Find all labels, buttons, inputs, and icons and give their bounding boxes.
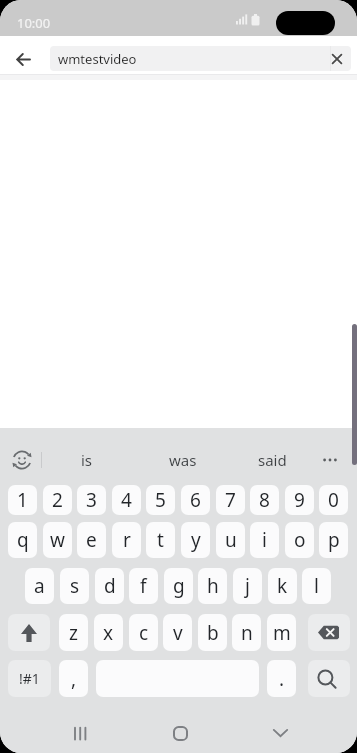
staticText: k — [277, 573, 288, 599]
staticText: 8 — [259, 487, 270, 513]
staticText: g — [173, 573, 185, 599]
button[interactable]: 3 — [77, 485, 106, 515]
staticText: p — [328, 527, 340, 553]
button[interactable] — [5, 443, 39, 477]
staticText: l — [314, 573, 319, 599]
staticText: w — [50, 527, 65, 553]
staticText: 5 — [155, 487, 166, 513]
button[interactable]: s — [60, 568, 89, 604]
staticText: s — [70, 573, 80, 599]
button[interactable]: g — [164, 568, 193, 604]
button[interactable]: wmtestvideo — [50, 46, 351, 71]
button[interactable]: x — [94, 614, 123, 651]
staticText: is — [81, 450, 93, 470]
staticText: m — [273, 620, 291, 646]
staticText: t — [157, 527, 164, 553]
button[interactable] — [162, 718, 198, 748]
staticText: 6 — [190, 487, 201, 513]
staticText: 2 — [52, 487, 63, 513]
button[interactable]: k — [268, 568, 297, 604]
button[interactable]: i — [250, 522, 279, 558]
button[interactable] — [315, 445, 345, 475]
staticText: was — [169, 450, 197, 470]
staticText: wmtestvideo — [58, 50, 137, 68]
button[interactable]: 0 — [319, 485, 348, 515]
button[interactable]: p — [319, 522, 348, 558]
button[interactable]: o — [285, 522, 314, 558]
button[interactable]: q — [8, 522, 37, 558]
staticText: 7 — [225, 487, 236, 513]
button[interactable]: 2 — [43, 485, 72, 515]
staticText: u — [225, 527, 237, 553]
staticText: 0 — [328, 487, 339, 513]
button[interactable] — [308, 660, 350, 697]
staticText: x — [103, 620, 114, 646]
button[interactable]: l — [302, 568, 331, 604]
button[interactable]: c — [129, 614, 158, 651]
staticText: c — [139, 620, 149, 646]
button[interactable]: 4 — [112, 485, 141, 515]
button[interactable]: said — [246, 442, 298, 478]
staticText: said — [258, 450, 287, 470]
button[interactable]: h — [198, 568, 227, 604]
button[interactable]: , — [59, 660, 88, 697]
staticText: f — [140, 573, 147, 599]
staticText: v — [173, 620, 183, 646]
button[interactable]: . — [267, 660, 296, 697]
staticText: 9 — [294, 487, 305, 513]
button[interactable]: v — [163, 614, 192, 651]
button[interactable]: 5 — [146, 485, 175, 515]
staticText: q — [17, 527, 29, 553]
staticText: z — [69, 620, 78, 646]
button[interactable]: u — [216, 522, 245, 558]
button[interactable]: 6 — [181, 485, 210, 515]
staticText: r — [123, 527, 131, 553]
staticText: i — [262, 527, 267, 553]
staticText: a — [34, 573, 45, 599]
button[interactable]: m — [267, 614, 296, 651]
button[interactable]: t — [146, 522, 175, 558]
staticText: d — [104, 573, 116, 599]
button[interactable]: 7 — [216, 485, 245, 515]
button[interactable]: w — [43, 522, 72, 558]
button[interactable] — [326, 46, 347, 71]
button[interactable]: r — [112, 522, 141, 558]
staticText: o — [294, 527, 306, 553]
button[interactable] — [62, 718, 98, 748]
staticText: 4 — [121, 487, 132, 513]
button[interactable]: 8 — [250, 485, 279, 515]
button[interactable]: 9 — [285, 485, 314, 515]
button[interactable]: d — [95, 568, 124, 604]
button[interactable]: e — [77, 522, 106, 558]
button[interactable]: n — [232, 614, 261, 651]
button[interactable]: f — [129, 568, 158, 604]
staticText: e — [86, 527, 97, 553]
staticText: h — [207, 573, 219, 599]
staticText: b — [207, 620, 219, 646]
button[interactable]: a — [25, 568, 54, 604]
staticText: n — [241, 620, 253, 646]
button[interactable] — [8, 44, 38, 74]
staticText: . — [279, 666, 285, 692]
button[interactable]: is — [61, 442, 112, 478]
staticText: 1 — [17, 487, 28, 513]
staticText: 3 — [86, 487, 97, 513]
button[interactable]: y — [181, 522, 210, 558]
button[interactable] — [308, 614, 350, 651]
button[interactable]: was — [157, 442, 209, 478]
button[interactable]: z — [59, 614, 88, 651]
button[interactable] — [8, 614, 50, 651]
staticText: 10:00 — [17, 14, 51, 32]
button[interactable]: 1 — [8, 485, 37, 515]
staticText: !#1 — [19, 669, 40, 688]
button[interactable]: j — [233, 568, 262, 604]
button[interactable]: b — [198, 614, 227, 651]
staticText: y — [191, 527, 201, 553]
staticText: , — [71, 666, 77, 692]
staticText: j — [245, 573, 250, 599]
button[interactable] — [262, 718, 298, 748]
button[interactable]: !#1 — [8, 660, 51, 697]
